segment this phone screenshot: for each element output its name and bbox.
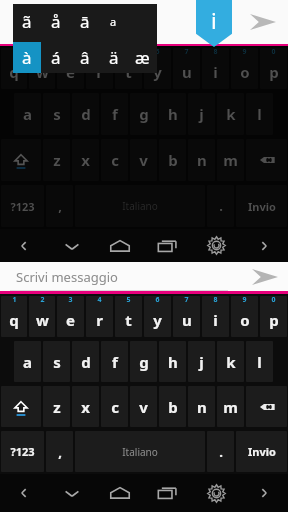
button[interactable]: 0 (260, 48, 287, 89)
staticText: j (199, 104, 204, 124)
button[interactable]: a (14, 341, 41, 382)
button[interactable]: 5 (115, 48, 142, 89)
staticText: a (23, 104, 32, 124)
button[interactable]: Shift (1, 139, 41, 181)
button[interactable]: , (46, 431, 73, 472)
button[interactable]: Invio (236, 431, 287, 472)
button[interactable]: Previous (0, 474, 48, 512)
button[interactable]: b (159, 139, 186, 181)
button[interactable]: 2 (29, 48, 55, 89)
button[interactable]: f (101, 341, 128, 382)
button[interactable]: . (207, 431, 234, 472)
staticText: u (182, 62, 192, 82)
button[interactable]: Backspace (246, 386, 287, 427)
button[interactable]: z (43, 139, 70, 181)
button[interactable]: Settings (192, 474, 240, 512)
staticText: m (223, 150, 238, 170)
button[interactable]: a (14, 93, 41, 135)
button[interactable]: b (159, 386, 186, 427)
button[interactable]: Send message (248, 262, 282, 291)
button[interactable]: 6 (144, 48, 171, 89)
button[interactable]: Back (48, 474, 96, 512)
staticText: l (257, 352, 262, 372)
button[interactable]: à (13, 42, 41, 73)
staticText: g (139, 104, 149, 124)
button[interactable]: Recents (144, 474, 192, 512)
button[interactable]: 8 (202, 296, 229, 337)
button[interactable]: å (41, 4, 70, 38)
button[interactable]: d (72, 93, 99, 135)
button[interactable]: s (43, 93, 70, 135)
button[interactable]: Invio (236, 185, 287, 227)
button[interactable]: j (188, 93, 215, 135)
button[interactable]: ?123 (1, 185, 44, 227)
button[interactable]: 5 (115, 296, 142, 337)
button[interactable]: Shift (1, 386, 41, 427)
button[interactable]: á (41, 42, 70, 73)
button[interactable]: æ (128, 42, 157, 73)
button[interactable]: c (101, 139, 128, 181)
staticText: o (240, 62, 250, 82)
button[interactable]: k (217, 93, 244, 135)
button[interactable]: v (130, 386, 157, 427)
button[interactable]: 6 (144, 296, 171, 337)
button[interactable]: 9 (231, 296, 258, 337)
button[interactable]: Settings (192, 229, 240, 262)
button[interactable]: s (43, 341, 70, 382)
button[interactable]: l (246, 341, 273, 382)
button[interactable]: , (46, 185, 73, 227)
button[interactable]: Previous (0, 229, 48, 262)
button[interactable]: x (72, 386, 99, 427)
button[interactable]: c (101, 386, 128, 427)
button[interactable]: m (217, 386, 244, 427)
button[interactable]: 3 (57, 48, 84, 89)
button[interactable]: 9 (231, 48, 258, 89)
button[interactable]: Italiano (75, 431, 205, 472)
button[interactable]: m (217, 139, 244, 181)
button[interactable]: 1 (1, 48, 27, 89)
button[interactable]: 7 (173, 296, 200, 337)
button[interactable]: ä (99, 42, 128, 73)
button[interactable]: ã (13, 4, 41, 38)
button[interactable]: ?123 (1, 431, 44, 472)
button[interactable]: j (188, 341, 215, 382)
button[interactable]: h (159, 341, 186, 382)
button[interactable]: Backspace (246, 139, 287, 181)
button[interactable]: 8 (202, 48, 229, 89)
button[interactable]: d (72, 341, 99, 382)
staticText: Italiano (122, 445, 158, 459)
button[interactable]: v (130, 139, 157, 181)
button[interactable]: 1 (1, 296, 27, 337)
button[interactable]: n (188, 139, 215, 181)
staticText: y (153, 310, 162, 330)
button[interactable]: Home (96, 229, 144, 262)
button[interactable]: a (99, 4, 128, 38)
button[interactable]: f (101, 93, 128, 135)
button[interactable]: 4 (86, 48, 113, 89)
button[interactable]: Next (240, 474, 288, 512)
button[interactable]: 3 (57, 296, 84, 337)
button[interactable]: Back (48, 229, 96, 262)
button[interactable]: 7 (173, 48, 200, 89)
button[interactable]: Send (246, 5, 280, 39)
button[interactable]: Next (240, 229, 288, 262)
button[interactable]: . (207, 185, 234, 227)
button[interactable]: h (159, 93, 186, 135)
button[interactable]: k (217, 341, 244, 382)
button[interactable]: z (43, 386, 70, 427)
button[interactable]: â (70, 42, 99, 73)
staticText: å (51, 10, 61, 33)
button[interactable]: n (188, 386, 215, 427)
button[interactable]: 4 (86, 296, 113, 337)
button[interactable]: g (130, 93, 157, 135)
button[interactable]: l (246, 93, 273, 135)
button[interactable]: Home (96, 474, 144, 512)
button[interactable]: g (130, 341, 157, 382)
button[interactable]: ā (70, 4, 99, 38)
button[interactable]: 2 (29, 296, 55, 337)
button[interactable]: Recents (144, 229, 192, 262)
button[interactable]: 0 (260, 296, 287, 337)
staticText: 0 (271, 296, 276, 305)
button[interactable]: x (72, 139, 99, 181)
